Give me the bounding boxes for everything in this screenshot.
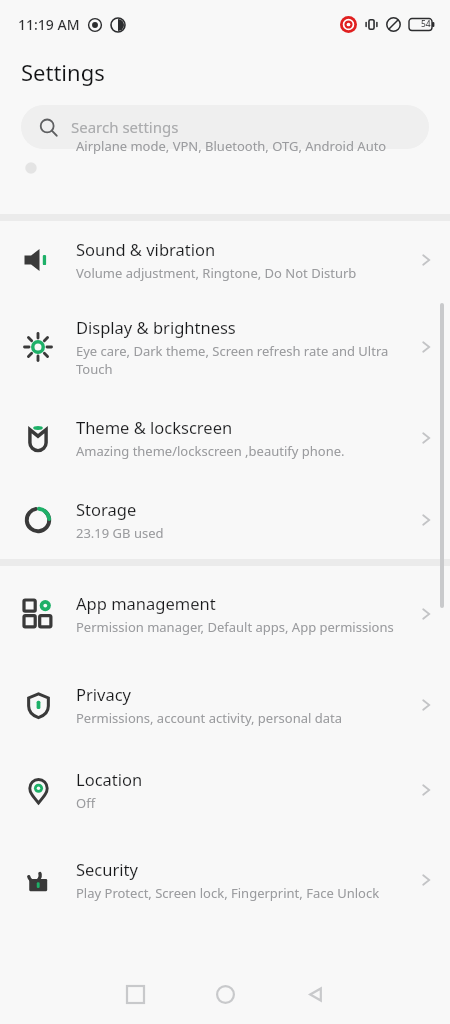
- button[interactable]: Search settings: [21, 105, 429, 149]
- staticText: Eye care, Dark theme, Screen refresh rat…: [76, 342, 408, 378]
- staticText: Amazing theme/lockscreen ,beautify phone…: [76, 442, 345, 460]
- staticText: Location: [76, 768, 143, 790]
- button[interactable]: Privacy: [0, 662, 450, 747]
- button[interactable]: App management: [0, 566, 450, 662]
- button[interactable]: Back: [270, 964, 360, 1024]
- button[interactable]: Security: [0, 832, 450, 928]
- staticText: Permissions, account activity, personal …: [76, 709, 342, 727]
- staticText: Airplane mode, VPN, Bluetooth, OTG, Andr…: [76, 137, 387, 155]
- staticText: Security: [76, 858, 138, 880]
- button[interactable]: Theme & lockscreen: [0, 395, 450, 481]
- staticText: Privacy: [76, 683, 132, 705]
- staticText: Display & brightness: [76, 316, 236, 338]
- button[interactable]: Recent apps: [90, 964, 180, 1024]
- button[interactable]: Display & brightness: [0, 299, 450, 395]
- staticText: Sound & vibration: [76, 238, 216, 260]
- staticText: 54: [421, 18, 431, 30]
- button[interactable]: Home: [180, 964, 270, 1024]
- staticText: Settings: [21, 57, 105, 87]
- button[interactable]: Storage: [0, 481, 450, 559]
- staticText: 11:19 AM: [18, 15, 80, 34]
- staticText: Off: [76, 794, 96, 812]
- staticText: Permission manager, Default apps, App pe…: [76, 618, 394, 636]
- staticText: Play Protect, Screen lock, Fingerprint, …: [76, 884, 380, 902]
- staticText: Storage: [76, 498, 137, 520]
- staticText: Search settings: [71, 117, 179, 137]
- staticText: Volume adjustment, Ringtone, Do Not Dist…: [76, 264, 357, 282]
- staticText: App management: [76, 592, 216, 614]
- staticText: 23.19 GB used: [76, 524, 164, 542]
- button[interactable]: Location: [0, 747, 450, 832]
- button[interactable]: Sound & vibration: [0, 221, 450, 299]
- staticText: Theme & lockscreen: [76, 416, 233, 438]
